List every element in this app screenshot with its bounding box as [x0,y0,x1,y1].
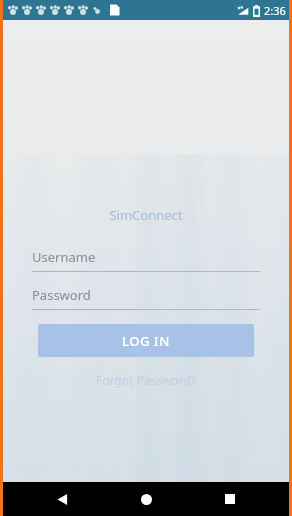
staticText: Password [32,286,91,304]
button[interactable]: Forgot Password? [86,370,206,390]
button[interactable]: Recent apps [208,482,252,516]
staticText: LOG IN [122,332,170,350]
button[interactable]: Back [40,482,84,516]
staticText: Username [32,248,96,266]
button[interactable]: Home [124,482,168,516]
button[interactable]: LOG IN [38,324,254,357]
staticText: 2:36 [264,3,286,18]
staticText: SimConnect [109,206,183,224]
staticText: Forgot Password? [96,372,196,388]
